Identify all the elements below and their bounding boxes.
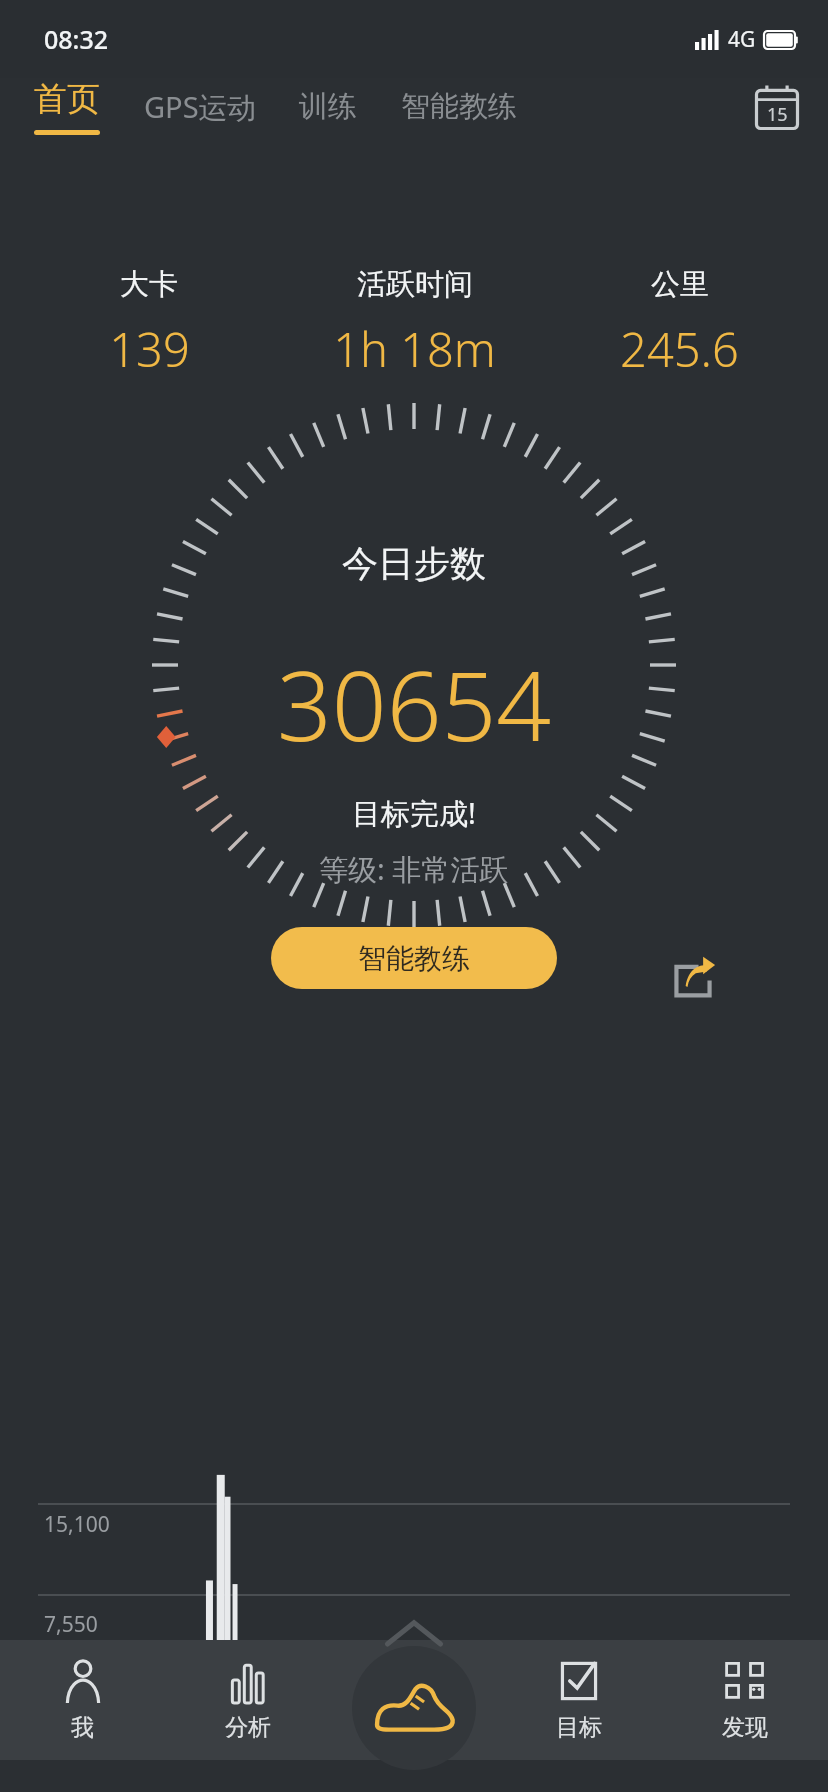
staticText: 245.6 xyxy=(620,317,739,381)
button[interactable]: 大卡 xyxy=(16,266,282,381)
button[interactable]: 首页 xyxy=(32,78,102,135)
staticText: 等级: 非常活跃 xyxy=(319,849,509,889)
staticText: 1h 18m xyxy=(333,317,496,381)
staticText: 15,100 xyxy=(44,1510,110,1539)
button[interactable]: 活跃时间 xyxy=(282,266,547,381)
staticText: 4G xyxy=(728,25,756,54)
button[interactable]: 公里 xyxy=(547,266,812,381)
staticText: 12:00 xyxy=(336,1696,393,1726)
staticText: 公里 xyxy=(651,266,709,303)
staticText: 训练 xyxy=(299,88,357,125)
staticText: 分析 xyxy=(225,1713,271,1742)
staticText: 00:00 xyxy=(743,1696,800,1726)
button[interactable]: GPS运动 xyxy=(142,81,259,133)
button[interactable]: Calendar xyxy=(750,80,804,134)
staticText: 08:32 xyxy=(44,22,109,56)
button[interactable]: 训练 xyxy=(297,82,359,131)
button[interactable]: 智能教练 xyxy=(271,927,557,989)
staticText: 智能教练 xyxy=(358,941,470,976)
staticText: 139 xyxy=(109,317,190,381)
button[interactable]: 智能教练 xyxy=(399,82,519,131)
button[interactable]: 发现 xyxy=(662,1640,828,1760)
staticText: 我 xyxy=(71,1713,94,1742)
staticText: 活跃时间 xyxy=(357,266,473,303)
button[interactable]: 分析 xyxy=(165,1640,330,1760)
staticText: 18:00 xyxy=(545,1696,602,1726)
button[interactable]: 我 xyxy=(0,1640,165,1760)
staticText: 今日步数 xyxy=(342,541,486,586)
staticText: 发现 xyxy=(722,1713,768,1742)
button[interactable]: Start workout xyxy=(352,1646,476,1770)
staticText: GPS运动 xyxy=(144,87,257,127)
staticText: 15 xyxy=(767,102,788,127)
staticText: 7,550 xyxy=(44,1610,98,1639)
staticText: 30654 xyxy=(277,638,552,769)
staticText: 智能教练 xyxy=(401,88,517,125)
button[interactable]: 目标 xyxy=(496,1640,662,1760)
staticText: 大卡 xyxy=(120,266,178,303)
staticText: 目标完成! xyxy=(352,793,476,833)
staticText: 目标 xyxy=(556,1713,602,1742)
button[interactable]: Share xyxy=(664,949,722,1003)
staticText: 首页 xyxy=(34,78,100,120)
